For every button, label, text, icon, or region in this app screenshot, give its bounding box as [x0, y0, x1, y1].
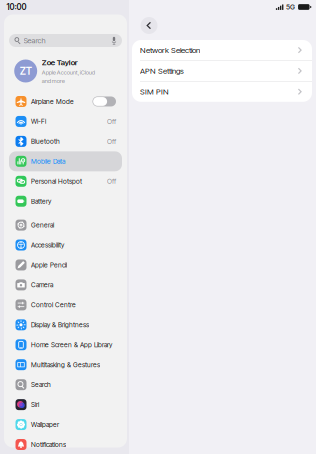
- staticText: 5G: [286, 3, 295, 11]
- staticText: General: [31, 221, 54, 229]
- button[interactable]: Control Centre: [9, 295, 122, 315]
- staticText: SIM PIN: [140, 87, 169, 96]
- button[interactable]: Search: [9, 375, 122, 395]
- staticText: 10:00: [6, 2, 26, 12]
- button[interactable]: Bluetooth: [9, 131, 122, 151]
- staticText: Off: [107, 137, 116, 146]
- button[interactable]: Apple Pencil: [9, 255, 122, 275]
- button[interactable]: Airplane Mode: [9, 91, 122, 111]
- staticText: Wallpaper: [31, 420, 59, 429]
- staticText: Control Centre: [31, 301, 76, 309]
- staticText: Wi-Fi: [31, 117, 46, 125]
- staticText: APN Settings: [140, 66, 184, 76]
- button[interactable]: Battery: [9, 191, 122, 211]
- button[interactable]: Network Selection: [132, 40, 312, 61]
- staticText: Zoe Taylor: [42, 58, 78, 67]
- staticText: Personal Hotspot: [31, 177, 82, 185]
- staticText: Bluetooth: [31, 137, 60, 145]
- button[interactable]: Camera: [9, 275, 122, 295]
- button[interactable]: Accessibility: [9, 235, 122, 255]
- button[interactable]: ZT: [9, 53, 122, 89]
- staticText: Search: [24, 36, 46, 45]
- staticText: ZT: [20, 65, 32, 77]
- staticText: Off: [107, 177, 116, 185]
- staticText: Notifications: [31, 440, 66, 449]
- button[interactable]: Multitasking & Gestures: [9, 355, 122, 375]
- staticText: Off: [107, 117, 116, 126]
- staticText: Multitasking & Gestures: [31, 361, 100, 369]
- button[interactable]: Personal Hotspot: [9, 171, 122, 191]
- staticText: Apple Pencil: [31, 261, 67, 269]
- button[interactable]: General: [9, 215, 122, 235]
- staticText: Camera: [31, 281, 53, 289]
- staticText: Accessibility: [31, 241, 64, 249]
- staticText: Battery: [31, 197, 51, 205]
- button[interactable]: Back: [138, 14, 160, 36]
- button[interactable]: Mobile Data: [9, 151, 122, 171]
- button[interactable]: Home Screen & App Library: [9, 335, 122, 355]
- staticText: Search: [31, 381, 51, 389]
- staticText: Airplane Mode: [31, 97, 74, 105]
- button[interactable]: Wallpaper: [9, 415, 122, 434]
- button[interactable]: SIM PIN: [132, 82, 312, 102]
- staticText: Display & Brightness: [31, 321, 89, 329]
- button[interactable]: Notifications: [9, 434, 122, 454]
- staticText: Apple Account, iCloud: [42, 69, 95, 76]
- button[interactable]: Siri: [9, 395, 122, 414]
- staticText: and more: [42, 77, 65, 84]
- button[interactable]: Wi-Fi: [9, 111, 122, 131]
- staticText: Network Selection: [140, 45, 200, 55]
- staticText: Siri: [31, 401, 39, 409]
- button[interactable]: Display & Brightness: [9, 315, 122, 335]
- staticText: Mobile Data: [31, 157, 65, 165]
- staticText: Home Screen & App Library: [31, 341, 112, 349]
- button[interactable]: APN Settings: [132, 61, 312, 82]
